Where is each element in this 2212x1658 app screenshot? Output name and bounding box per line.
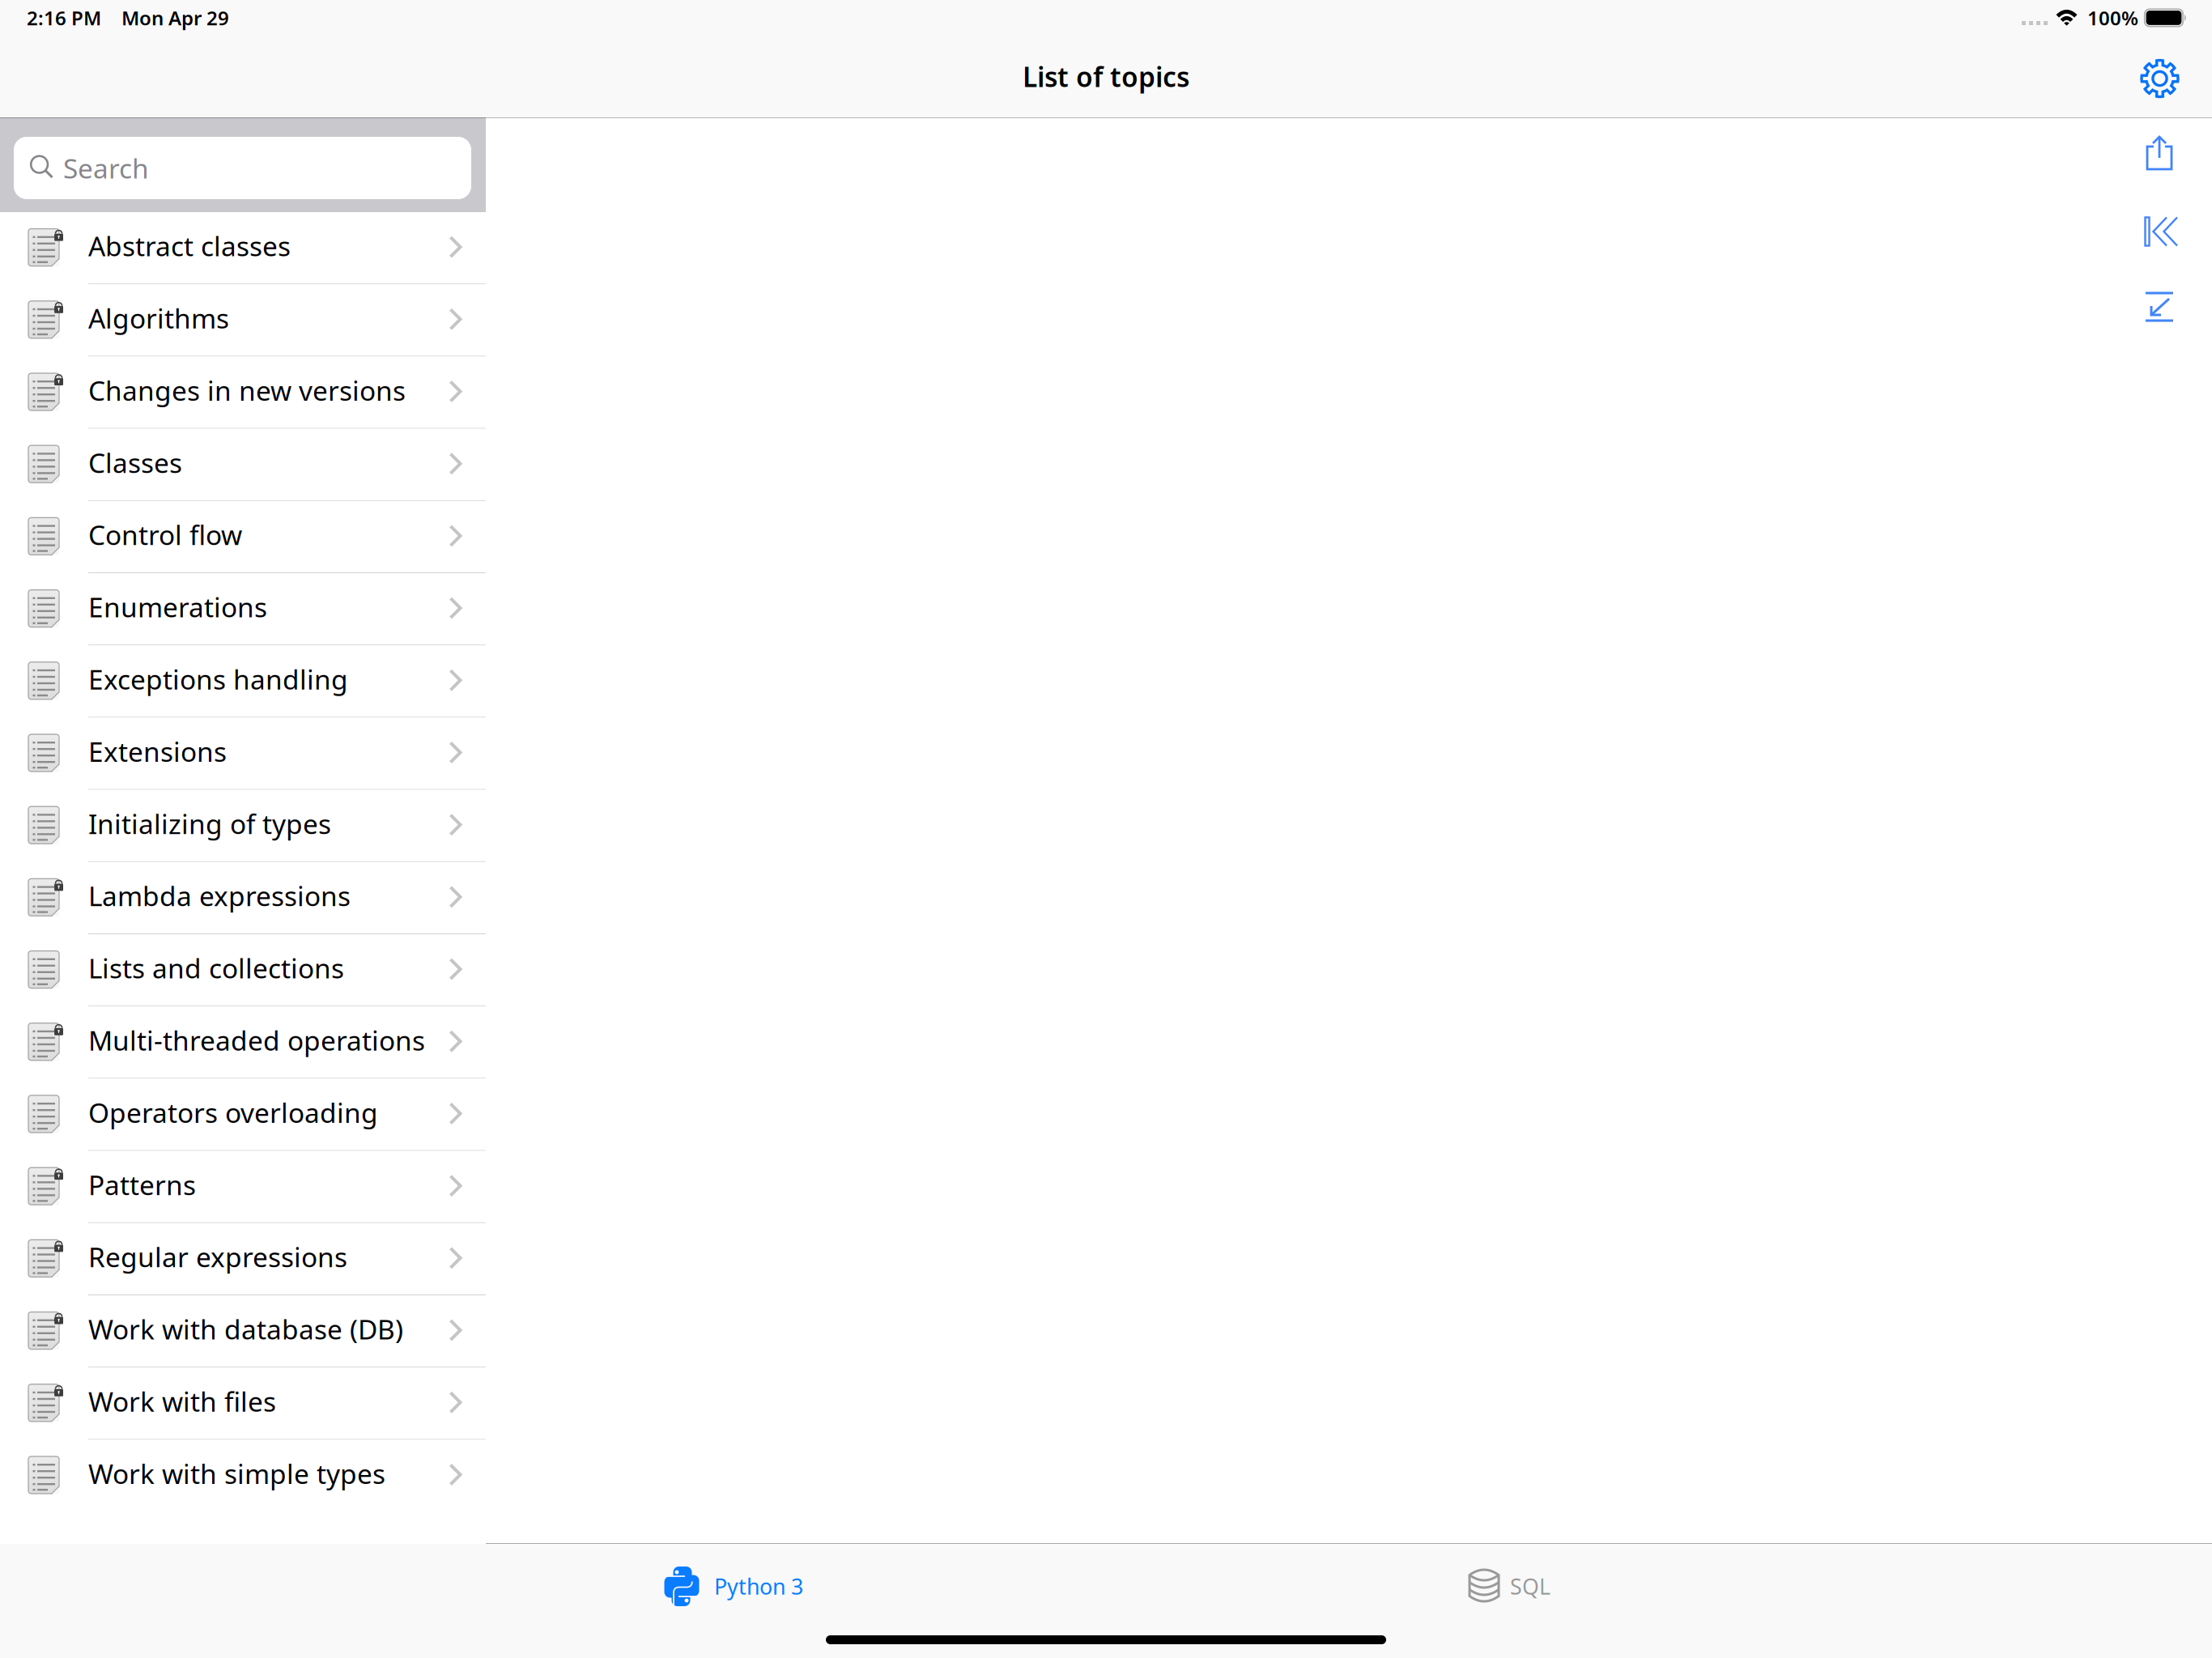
button[interactable]: Patterns	[0, 1151, 486, 1223]
staticText: 100%	[2087, 5, 2138, 31]
staticText: Exceptions handling	[88, 661, 348, 697]
button[interactable]: Changes in new versions	[0, 357, 486, 429]
staticText: Search	[63, 150, 149, 186]
button[interactable]: Lambda expressions	[0, 862, 486, 934]
staticText: 2:16 PM	[27, 5, 101, 31]
staticText: Patterns	[88, 1167, 196, 1203]
button[interactable]: Regular expressions	[0, 1223, 486, 1295]
button[interactable]: Collapse sidebar	[2133, 204, 2188, 259]
button[interactable]: Operators overloading	[0, 1079, 486, 1151]
staticText: SQL	[1510, 1572, 1551, 1601]
staticText: Changes in new versions	[88, 372, 406, 408]
button[interactable]: Exceptions handling	[0, 645, 486, 718]
button[interactable]: Extensions	[0, 718, 486, 790]
button[interactable]: Enumerations	[0, 573, 486, 645]
staticText: Abstract classes	[88, 228, 291, 264]
button[interactable]: SQL	[1444, 1555, 1575, 1618]
staticText: Control flow	[88, 517, 242, 553]
staticText: Work with files	[88, 1383, 276, 1419]
staticText: Work with database (DB)	[88, 1311, 403, 1347]
staticText: Mon Apr 29	[121, 5, 229, 31]
button[interactable]: Initializing of types	[0, 790, 486, 862]
button[interactable]: Abstract classes	[0, 212, 486, 284]
button[interactable]: Work with files	[0, 1368, 486, 1440]
staticText: Algorithms	[88, 300, 229, 336]
button[interactable]: Lists and collections	[0, 934, 486, 1006]
staticText: Enumerations	[88, 589, 267, 625]
button[interactable]: Multi-threaded operations	[0, 1006, 486, 1079]
staticText: Regular expressions	[88, 1239, 347, 1275]
button[interactable]: Python 3	[636, 1552, 827, 1620]
staticText: Operators overloading	[88, 1094, 378, 1130]
button[interactable]: Control flow	[0, 501, 486, 573]
button[interactable]: Work with simple types	[0, 1440, 486, 1512]
staticText: Lists and collections	[88, 950, 344, 986]
staticText: Python 3	[714, 1572, 803, 1601]
staticText: Classes	[88, 445, 182, 480]
button[interactable]: Work with database (DB)	[0, 1295, 486, 1368]
staticText: Lambda expressions	[88, 878, 351, 914]
button[interactable]: Resize window	[2132, 279, 2187, 334]
staticText: Work with simple types	[88, 1456, 385, 1491]
staticText: Initializing of types	[88, 806, 331, 841]
button[interactable]: Settings	[2129, 48, 2190, 109]
staticText: Multi-threaded operations	[88, 1022, 425, 1058]
staticText: Extensions	[88, 733, 227, 769]
button[interactable]: Share	[2132, 125, 2187, 181]
staticText: List of topics	[1023, 59, 1189, 94]
button[interactable]: Classes	[0, 429, 486, 501]
button[interactable]: Algorithms	[0, 284, 486, 357]
